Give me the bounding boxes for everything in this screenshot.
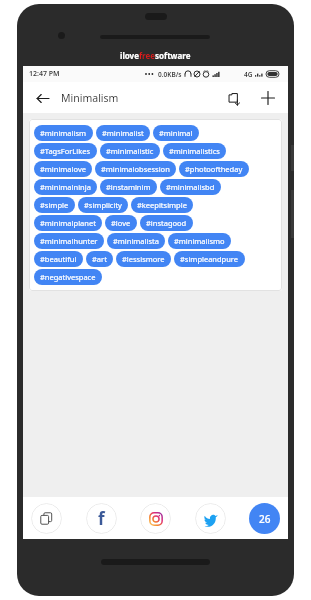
staticText: f: [98, 507, 105, 530]
button[interactable]: #minimalobsession: [95, 161, 176, 177]
staticText: #keepitsimple: [137, 200, 187, 210]
button[interactable]: #minimalist: [96, 125, 150, 141]
button[interactable]: Save to collection: [222, 86, 246, 110]
staticText: #negativespace: [40, 272, 96, 282]
button[interactable]: #minimalisbd: [160, 179, 221, 195]
button[interactable]: #minimalove: [34, 161, 92, 177]
staticText: #simple: [40, 200, 69, 210]
staticText: ilovefreesoftware: [120, 50, 191, 61]
button[interactable]: #instagood: [140, 215, 193, 231]
staticText: 12:47 PM: [29, 69, 60, 79]
button[interactable]: #art: [86, 251, 113, 267]
button[interactable]: Share on Instagram: [140, 503, 171, 534]
button[interactable]: #minimalistics: [163, 143, 226, 159]
staticText: #instagood: [146, 218, 187, 228]
button[interactable]: #instaminim: [100, 179, 157, 195]
button[interactable]: #minimalninja: [34, 179, 97, 195]
button[interactable]: #minimalplanet: [34, 215, 102, 231]
button[interactable]: Share on Twitter: [195, 503, 226, 534]
staticText: #minimalistic: [106, 146, 154, 156]
staticText: #minimalove: [40, 164, 86, 174]
button[interactable]: #minimalismo: [168, 233, 231, 249]
staticText: #art: [92, 254, 107, 264]
staticText: #minimalhunter: [40, 236, 98, 246]
button[interactable]: #minimalistic: [100, 143, 160, 159]
button[interactable]: #minimalism: [34, 125, 93, 141]
staticText: #instaminim: [106, 182, 151, 192]
staticText: #simplicity: [84, 200, 122, 210]
button[interactable]: #simpleandpure: [174, 251, 245, 267]
button[interactable]: #keepitsimple: [131, 197, 193, 213]
staticText: #lessismore: [122, 254, 165, 264]
staticText: #love: [111, 218, 131, 228]
staticText: #simpleandpure: [180, 254, 239, 264]
staticText: #minimalista: [113, 236, 159, 246]
button[interactable]: #love: [105, 215, 137, 231]
staticText: #minimalplanet: [40, 218, 96, 228]
staticText: 26: [259, 512, 271, 526]
button[interactable]: #simple: [34, 197, 75, 213]
button[interactable]: Back: [31, 87, 53, 109]
button[interactable]: #simplicity: [78, 197, 128, 213]
button[interactable]: #beautiful: [34, 251, 83, 267]
button[interactable]: #photooftheday: [179, 161, 249, 177]
button[interactable]: #minimal: [153, 125, 199, 141]
staticText: 4G: [244, 70, 253, 79]
staticText: #minimalobsession: [101, 164, 170, 174]
staticText: #beautiful: [40, 254, 77, 264]
button[interactable]: #negativespace: [34, 269, 102, 285]
staticText: #minimalism: [40, 128, 87, 138]
button[interactable]: Share on Facebook: [86, 503, 117, 534]
staticText: #minimalismo: [174, 236, 225, 246]
button[interactable]: #lessismore: [116, 251, 171, 267]
staticText: #TagsForLikes: [40, 146, 91, 156]
staticText: 0.0KB/s: [158, 70, 182, 79]
staticText: Minimalism: [61, 91, 119, 105]
button[interactable]: Copy: [31, 503, 62, 534]
staticText: #minimalninja: [40, 182, 91, 192]
staticText: #photooftheday: [185, 164, 243, 174]
staticText: #minimalisbd: [166, 182, 215, 192]
button[interactable]: 26: [249, 503, 280, 534]
staticText: #minimalist: [102, 128, 144, 138]
staticText: #minimal: [159, 128, 193, 138]
button[interactable]: #TagsForLikes: [34, 143, 97, 159]
button[interactable]: Add: [256, 86, 280, 110]
button[interactable]: #minimalhunter: [34, 233, 104, 249]
staticText: #minimalistics: [169, 146, 220, 156]
button[interactable]: #minimalista: [107, 233, 165, 249]
